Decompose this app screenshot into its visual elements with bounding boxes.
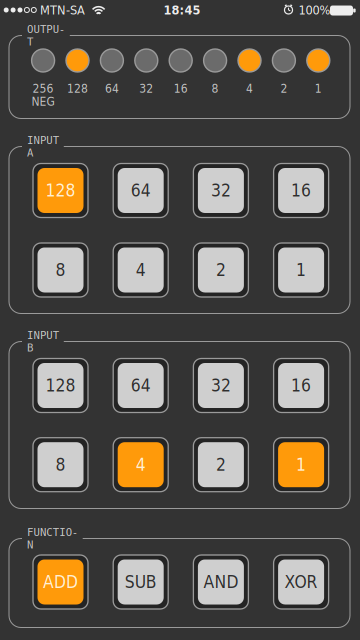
button[interactable]: SUB: [113, 555, 168, 609]
button[interactable]: 8: [198, 48, 232, 108]
staticText: 32: [139, 81, 153, 95]
button[interactable]: 4: [232, 48, 266, 108]
button[interactable]: 64: [95, 48, 129, 108]
staticText: 1: [296, 455, 306, 475]
staticText: 64: [105, 81, 119, 95]
button[interactable]: 8: [33, 438, 88, 492]
staticText: 64: [131, 180, 151, 201]
button[interactable]: 16: [274, 163, 329, 217]
button[interactable]: AND: [193, 555, 248, 609]
staticText: 1: [296, 260, 306, 280]
staticText: 4: [246, 81, 253, 95]
staticText: 18:45: [163, 3, 200, 17]
staticText: 16: [291, 375, 311, 396]
staticText: 128: [45, 180, 75, 201]
staticText: 16: [291, 180, 311, 201]
staticText: 2: [216, 260, 226, 280]
staticText: 32: [211, 375, 231, 396]
button[interactable]: 128: [33, 358, 88, 412]
staticText: INPUT A: [27, 134, 59, 159]
staticText: ADD: [43, 572, 78, 592]
button[interactable]: 1: [274, 438, 329, 492]
button[interactable]: 32: [193, 358, 248, 412]
staticText: INPUT B: [27, 329, 59, 354]
button[interactable]: 16: [274, 358, 329, 412]
button[interactable]: 256: [26, 48, 60, 108]
staticText: 8: [55, 455, 65, 475]
button[interactable]: XOR: [274, 555, 329, 609]
staticText: 2: [216, 455, 226, 475]
button[interactable]: 8: [33, 243, 88, 297]
staticText: 128: [67, 81, 88, 95]
staticText: AND: [203, 572, 238, 592]
button[interactable]: 128: [33, 163, 88, 217]
staticText: 8: [212, 81, 219, 95]
staticText: 100%: [298, 3, 330, 17]
button[interactable]: 4: [113, 243, 168, 297]
staticText: 256: [33, 81, 54, 95]
button[interactable]: 16: [164, 48, 198, 108]
staticText: MTN-SA: [40, 3, 85, 17]
staticText: 32: [211, 180, 231, 201]
staticText: 8: [55, 260, 65, 280]
staticText: 4: [136, 260, 146, 280]
staticText: 64: [131, 375, 151, 396]
button[interactable]: 2: [193, 243, 248, 297]
staticText: 2: [280, 81, 287, 95]
staticText: 128: [45, 375, 75, 396]
staticText: 16: [174, 81, 188, 95]
staticText: FUNCTION: [27, 526, 78, 551]
button[interactable]: ADD: [33, 555, 88, 609]
button[interactable]: 2: [267, 48, 301, 108]
button[interactable]: 1: [274, 243, 329, 297]
button[interactable]: 2: [193, 438, 248, 492]
button[interactable]: 128: [60, 48, 94, 108]
staticText: NEG: [32, 94, 55, 108]
staticText: 1: [315, 81, 322, 95]
staticText: 4: [136, 455, 146, 475]
button[interactable]: 64: [113, 358, 168, 412]
button[interactable]: 32: [193, 163, 248, 217]
button[interactable]: 1: [301, 48, 335, 108]
button[interactable]: 32: [129, 48, 163, 108]
staticText: XOR: [285, 572, 318, 592]
staticText: SUB: [125, 572, 157, 592]
staticText: OUTPUT: [27, 23, 65, 48]
button[interactable]: 4: [113, 438, 168, 492]
button[interactable]: 64: [113, 163, 168, 217]
